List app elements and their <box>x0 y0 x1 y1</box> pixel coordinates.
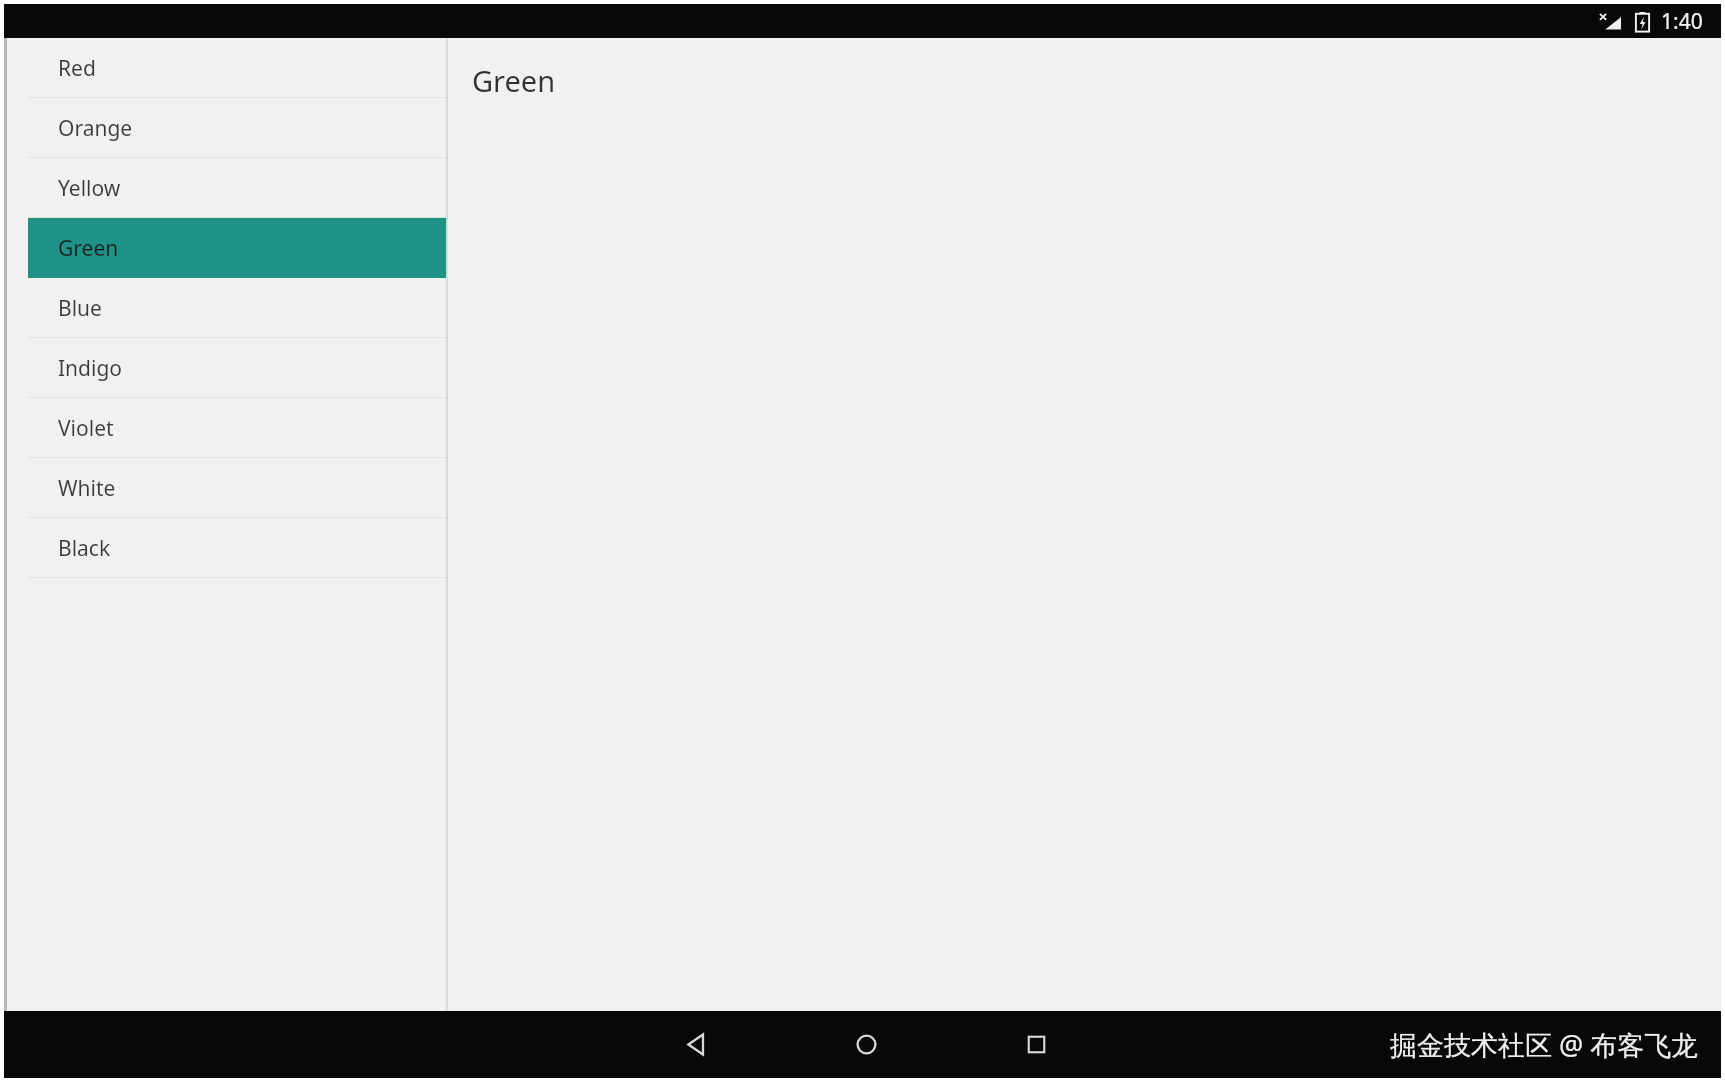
staticText: 1:40 <box>1661 7 1703 36</box>
staticText: 掘金技术社区 @ 布客飞龙 <box>1390 1026 1699 1063</box>
staticText: Black <box>58 534 111 563</box>
staticText: Orange <box>58 114 133 143</box>
staticText: Green <box>58 234 119 263</box>
button[interactable]: Violet <box>28 398 448 458</box>
staticText: Green <box>472 61 556 100</box>
button[interactable]: Yellow <box>28 158 448 218</box>
staticText: Red <box>58 54 96 83</box>
button[interactable]: Recent apps <box>1002 1011 1070 1078</box>
button[interactable]: Green <box>28 218 448 278</box>
button[interactable]: Blue <box>28 278 448 338</box>
button[interactable]: Black <box>28 518 448 578</box>
button[interactable]: Home <box>832 1011 900 1078</box>
staticText: Yellow <box>58 174 121 203</box>
staticText: Violet <box>58 414 114 443</box>
button[interactable]: Indigo <box>28 338 448 398</box>
staticText: Blue <box>58 294 102 323</box>
button[interactable]: Orange <box>28 98 448 158</box>
staticText: White <box>58 474 116 503</box>
button[interactable]: Red <box>28 38 448 98</box>
button[interactable]: White <box>28 458 448 518</box>
button[interactable]: Back <box>662 1011 730 1078</box>
staticText: Indigo <box>58 354 123 383</box>
